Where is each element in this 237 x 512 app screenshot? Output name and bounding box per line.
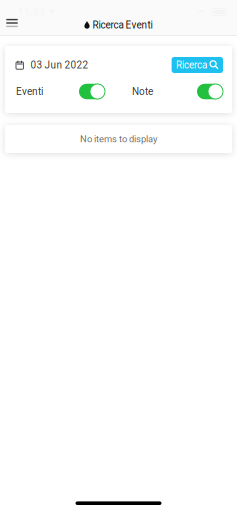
button[interactable]: Menu — [0, 12, 24, 38]
staticText: Note — [132, 86, 153, 97]
staticText: No items to display — [80, 133, 157, 144]
button[interactable]: Eventi — [5, 83, 105, 100]
button[interactable]: Ricerca — [172, 57, 223, 73]
staticText: Ricerca — [176, 59, 207, 71]
button[interactable]: Note — [132, 83, 232, 100]
staticText: Ricerca Eventi — [93, 19, 153, 31]
staticText: Eventi — [16, 86, 43, 97]
staticText: 03 Jun 2022 — [30, 59, 88, 71]
button[interactable]: 03 Jun 2022 — [5, 56, 88, 74]
